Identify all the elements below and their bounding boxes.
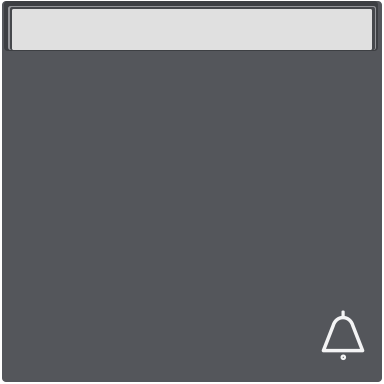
button[interactable]: Ring doorbell bbox=[321, 310, 365, 362]
